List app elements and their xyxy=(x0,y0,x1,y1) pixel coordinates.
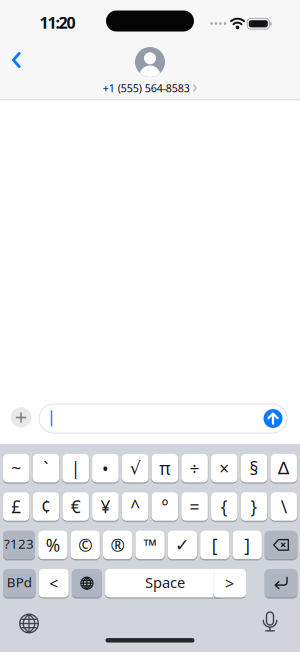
button[interactable] xyxy=(265,531,297,559)
staticText: ÷ xyxy=(190,457,200,480)
button[interactable]: § xyxy=(241,454,267,482)
button[interactable]: ] xyxy=(233,531,262,559)
button[interactable]: \ xyxy=(270,492,297,521)
button[interactable]: = xyxy=(181,492,208,521)
button[interactable]: % xyxy=(38,531,67,559)
button[interactable]: < xyxy=(39,569,69,597)
staticText: ® xyxy=(111,533,125,556)
button[interactable]: ™ xyxy=(135,531,165,559)
staticText: % xyxy=(46,533,60,556)
button[interactable]: ?123 xyxy=(3,531,35,559)
staticText: { xyxy=(221,495,228,518)
staticText: ] xyxy=(244,533,250,556)
button[interactable]: € xyxy=(62,492,89,521)
button[interactable]: | xyxy=(62,454,89,482)
staticText: § xyxy=(249,457,258,480)
staticText: ¢ xyxy=(41,495,51,518)
staticText: ° xyxy=(161,495,168,518)
staticText: £ xyxy=(11,495,21,518)
staticText: € xyxy=(71,495,81,518)
button[interactable]: ¢ xyxy=(33,492,59,521)
button[interactable]: +1 (555) 564-8583 xyxy=(103,81,197,95)
staticText: ` xyxy=(43,457,48,480)
staticText: Space xyxy=(145,573,185,592)
button[interactable]: > xyxy=(213,569,246,597)
staticText: > xyxy=(225,573,234,594)
staticText: = xyxy=(190,495,200,518)
staticText: ~ xyxy=(11,457,21,480)
staticText: < xyxy=(49,573,58,594)
button[interactable] xyxy=(72,569,102,597)
button[interactable]: ® xyxy=(103,531,132,559)
staticText: } xyxy=(250,495,257,518)
staticText: [ xyxy=(212,533,218,556)
button[interactable]: { xyxy=(211,492,238,521)
button[interactable] xyxy=(262,611,277,632)
button[interactable]: } xyxy=(241,492,267,521)
button[interactable]: • xyxy=(92,454,119,482)
staticText: 11:20 xyxy=(39,12,75,33)
button[interactable]: [ xyxy=(200,531,229,559)
button[interactable]: Space xyxy=(105,569,225,597)
button[interactable] xyxy=(265,569,297,597)
button[interactable]: ` xyxy=(33,454,59,482)
button[interactable]: ∆ xyxy=(270,454,297,482)
staticText: ?123 xyxy=(4,535,34,552)
staticText: π xyxy=(159,457,170,480)
button[interactable]: × xyxy=(211,454,238,482)
staticText: ✓ xyxy=(175,535,190,555)
button[interactable]: √ xyxy=(122,454,148,482)
staticText: | xyxy=(71,457,81,480)
staticText: ∆ xyxy=(278,458,290,478)
button[interactable]: π xyxy=(152,454,178,482)
staticText: \ xyxy=(281,495,287,518)
button[interactable]: ÷ xyxy=(181,454,208,482)
button[interactable]: BPd xyxy=(3,569,35,597)
button[interactable] xyxy=(12,52,21,68)
staticText: © xyxy=(78,533,92,556)
staticText: × xyxy=(219,457,229,480)
button[interactable]: ° xyxy=(152,492,178,521)
button[interactable]: ^ xyxy=(122,492,148,521)
staticText: ¥ xyxy=(100,495,110,518)
staticText: • xyxy=(102,457,109,480)
staticText: BPd xyxy=(7,573,32,591)
button[interactable]: ¥ xyxy=(92,492,119,521)
button[interactable]: £ xyxy=(3,492,29,521)
staticText: √ xyxy=(130,458,141,478)
button[interactable] xyxy=(20,614,38,633)
button[interactable]: ✓ xyxy=(168,531,197,559)
staticText: ™ xyxy=(143,533,156,556)
button[interactable]: ~ xyxy=(3,454,29,482)
button[interactable] xyxy=(135,47,165,77)
button[interactable] xyxy=(39,404,287,433)
staticText: +1 (555) 564-8583 xyxy=(103,81,190,95)
button[interactable] xyxy=(11,407,31,428)
button[interactable]: © xyxy=(71,531,100,559)
staticText: ^ xyxy=(130,495,140,518)
button[interactable] xyxy=(263,409,282,428)
